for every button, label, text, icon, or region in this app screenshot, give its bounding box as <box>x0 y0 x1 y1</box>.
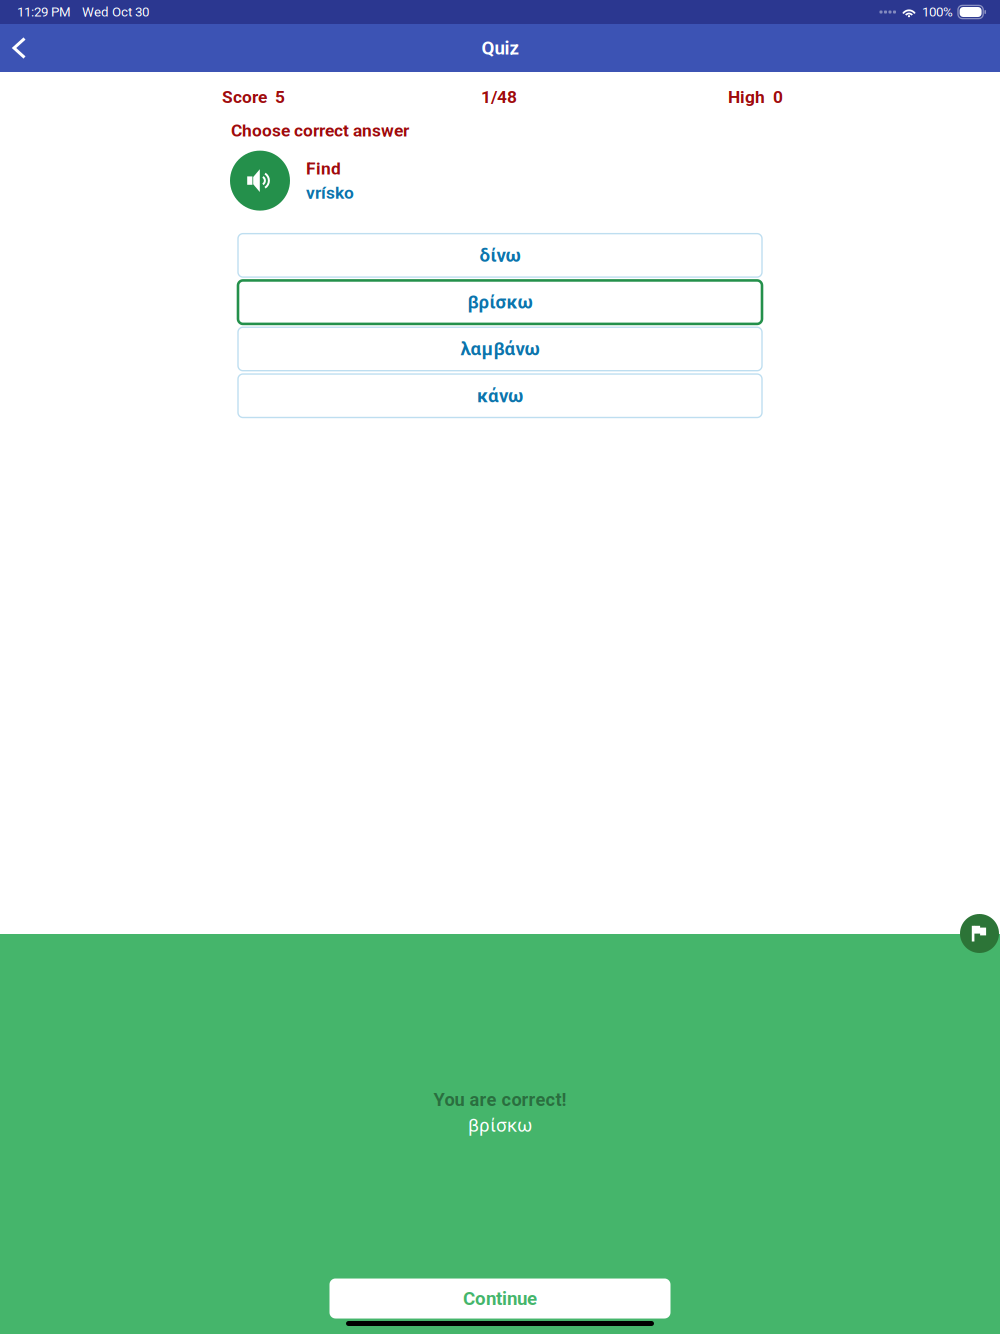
staticText: Wed Oct 30 <box>82 4 149 20</box>
staticText: vrísko <box>306 183 354 203</box>
staticText: Choose correct answer <box>231 120 409 141</box>
button[interactable]: κάνω <box>238 374 762 417</box>
button[interactable]: βρίσκω <box>238 280 762 324</box>
staticText: You are correct! <box>433 1089 566 1110</box>
button[interactable]: Play audio <box>230 151 290 211</box>
staticText: λαμβάνω <box>460 338 539 360</box>
staticText: Quiz <box>481 37 518 59</box>
staticText: δίνω <box>479 244 520 266</box>
staticText: βρίσκω <box>467 291 532 313</box>
button[interactable]: λαμβάνω <box>238 327 762 371</box>
button[interactable]: δίνω <box>238 234 762 277</box>
staticText: βρίσκω <box>468 1114 532 1136</box>
staticText: κάνω <box>477 385 523 407</box>
button[interactable]: Report a problem <box>960 914 999 953</box>
staticText: Find <box>306 158 341 179</box>
staticText: Continue <box>463 1288 537 1309</box>
staticText: Score 5 <box>222 87 285 107</box>
staticText: High 0 <box>728 87 783 107</box>
button[interactable]: Continue <box>329 1278 670 1318</box>
button[interactable]: Back <box>0 24 48 72</box>
staticText: 11:29 PM <box>17 4 71 20</box>
staticText: 1/48 <box>481 87 517 107</box>
staticText: 100% <box>922 4 953 20</box>
